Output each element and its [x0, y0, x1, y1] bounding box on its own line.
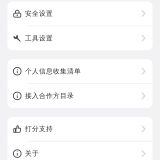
staticText: 打分支持: [25, 125, 53, 133]
staticText: 关于: [25, 149, 39, 158]
staticText: 工具设置: [25, 34, 53, 42]
button[interactable]: 工具设置: [7, 26, 152, 50]
staticText: 接入合作方目录: [25, 92, 74, 100]
button[interactable]: 接入合作方目录: [7, 84, 152, 108]
button[interactable]: 个人信息收集清单: [7, 59, 152, 83]
button[interactable]: 打分支持: [7, 117, 152, 141]
staticText: 个人信息收集清单: [25, 67, 81, 75]
button[interactable]: 关于: [7, 142, 152, 160]
staticText: 安全设置: [25, 9, 53, 18]
button[interactable]: 安全设置: [7, 1, 152, 25]
